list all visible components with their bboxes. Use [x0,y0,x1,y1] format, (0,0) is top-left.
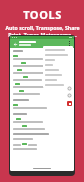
button[interactable] [43,77,73,82]
staticText: TOOLS [23,7,62,22]
button[interactable] [43,57,73,62]
button[interactable]: More options [67,41,72,46]
button[interactable]: Auto scroll [67,101,72,106]
button[interactable]: Zoom in [67,86,72,91]
button[interactable]: Zoom out [67,93,72,98]
button[interactable] [43,47,73,52]
staticText: Auto scroll, Transpose, Share [5,24,80,31]
button[interactable] [43,67,73,72]
button[interactable] [43,52,73,57]
button[interactable]: Back [12,41,18,47]
button[interactable] [43,62,73,67]
button[interactable] [43,82,73,87]
button[interactable] [43,72,73,77]
staticText: Print, Tuner, Metronome ... [8,31,77,38]
